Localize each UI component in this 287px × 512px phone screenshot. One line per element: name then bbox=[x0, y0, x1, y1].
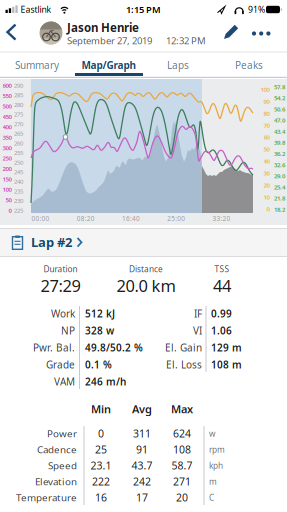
staticText: 311 bbox=[133, 426, 151, 441]
staticText: 0 bbox=[266, 205, 269, 213]
staticText: 240 bbox=[14, 177, 23, 186]
staticText: 20 bbox=[176, 490, 188, 505]
staticText: 43.7 bbox=[131, 458, 152, 473]
staticText: 18.2 bbox=[274, 205, 285, 213]
staticText: rpm bbox=[209, 444, 225, 455]
button[interactable] bbox=[219, 21, 242, 43]
button[interactable]: Map/Graph bbox=[69, 53, 149, 77]
staticText: 50 bbox=[5, 196, 11, 204]
staticText: 245 bbox=[14, 168, 23, 176]
staticText: 21.8 bbox=[274, 194, 285, 202]
staticText: Elevation bbox=[35, 475, 77, 488]
staticText: 00:00 bbox=[31, 214, 49, 223]
staticText: El. Loss bbox=[166, 358, 202, 371]
button[interactable]: Summary bbox=[4, 53, 70, 77]
staticText: 25:00 bbox=[167, 214, 185, 223]
staticText: 400 bbox=[2, 123, 11, 131]
staticText: Grade bbox=[46, 358, 75, 371]
staticText: 260 bbox=[14, 139, 23, 147]
staticText: 17 bbox=[136, 490, 148, 505]
staticText: 300 bbox=[2, 144, 11, 152]
staticText: 246 m/h bbox=[85, 375, 126, 388]
staticText: 57.8 bbox=[274, 83, 285, 91]
staticText: 290 bbox=[14, 81, 23, 89]
staticText: 16:40 bbox=[122, 214, 140, 223]
staticText: 108 m bbox=[211, 358, 242, 371]
staticText: 12:32 PM bbox=[166, 34, 206, 47]
staticText: Distance bbox=[129, 263, 163, 275]
staticText: 16 bbox=[95, 490, 107, 505]
staticText: Laps bbox=[167, 58, 189, 72]
staticText: Avg bbox=[132, 401, 152, 416]
staticText: VI bbox=[193, 324, 202, 337]
staticText: IF bbox=[194, 307, 202, 320]
staticText: 280 bbox=[14, 100, 23, 109]
button[interactable]: Lap #2 bbox=[0, 228, 287, 257]
staticText: 23.1 bbox=[90, 458, 111, 473]
staticText: VAM bbox=[54, 375, 75, 388]
staticText: 29.0 bbox=[274, 172, 285, 180]
staticText: El. Gain bbox=[165, 341, 202, 354]
staticText: 40 bbox=[263, 157, 269, 165]
staticText: 512 kJ bbox=[85, 307, 115, 320]
staticText: 58.7 bbox=[171, 458, 192, 473]
staticText: 100 bbox=[2, 185, 11, 194]
staticText: Pwr. Bal. bbox=[33, 341, 75, 354]
staticText: 108 bbox=[173, 442, 191, 457]
staticText: 350 bbox=[2, 133, 11, 141]
staticText: Summary bbox=[15, 58, 59, 72]
staticText: 32.6 bbox=[274, 161, 285, 169]
staticText: Jason Henrie bbox=[67, 20, 139, 35]
button[interactable]: Laps bbox=[153, 53, 203, 77]
staticText: Work bbox=[51, 307, 75, 320]
staticText: 270 bbox=[14, 120, 23, 128]
staticText: 47.0 bbox=[274, 116, 285, 124]
staticText: w bbox=[209, 428, 216, 439]
button[interactable]: Peaks bbox=[224, 53, 274, 77]
staticText: 0.1 % bbox=[85, 358, 112, 371]
staticText: 328 w bbox=[85, 324, 114, 337]
staticText: 30 bbox=[263, 169, 269, 177]
staticText: 129 m bbox=[211, 341, 242, 354]
staticText: Speed bbox=[48, 459, 77, 472]
staticText: 265 bbox=[14, 129, 23, 137]
staticText: 27:29 bbox=[40, 274, 80, 297]
staticText: 25.4 bbox=[274, 183, 285, 191]
staticText: 450 bbox=[2, 112, 11, 121]
button[interactable] bbox=[251, 28, 272, 38]
staticText: 90 bbox=[263, 97, 269, 105]
staticText: 230 bbox=[14, 197, 23, 205]
staticText: 0.99 bbox=[211, 307, 232, 320]
staticText: 222 bbox=[92, 474, 110, 489]
staticText: Peaks bbox=[235, 58, 263, 72]
staticText: NP bbox=[61, 324, 75, 337]
staticText: 20 bbox=[263, 181, 269, 189]
staticText: 49.8/50.2 % bbox=[85, 341, 143, 354]
staticText: C bbox=[209, 492, 214, 503]
staticText: Duration bbox=[43, 263, 77, 275]
staticText: 43.4 bbox=[274, 127, 285, 135]
staticText: Eastlink bbox=[20, 3, 51, 15]
staticText: 225 bbox=[14, 206, 23, 214]
staticText: 60 bbox=[263, 133, 269, 141]
staticText: 200 bbox=[2, 164, 11, 173]
staticText: 33:20 bbox=[212, 214, 230, 223]
staticText: 0 bbox=[8, 206, 11, 214]
staticText: 600 bbox=[2, 81, 11, 89]
staticText: 80 bbox=[263, 109, 269, 117]
staticText: 91 bbox=[136, 442, 148, 457]
staticText: Min bbox=[91, 401, 111, 416]
button[interactable] bbox=[1, 22, 23, 43]
staticText: 91% bbox=[248, 3, 265, 15]
staticText: 255 bbox=[14, 148, 23, 157]
staticText: 70 bbox=[263, 121, 269, 129]
staticText: September 27, 2019 bbox=[67, 34, 152, 47]
staticText: 285 bbox=[14, 91, 23, 99]
staticText: 50.6 bbox=[274, 105, 285, 113]
staticText: 100 bbox=[260, 85, 269, 93]
staticText: 0 bbox=[98, 426, 104, 441]
staticText: 250 bbox=[14, 158, 23, 166]
staticText: Temperature bbox=[16, 491, 77, 504]
staticText: Cadence bbox=[37, 443, 77, 456]
staticText: 25 bbox=[95, 442, 107, 457]
